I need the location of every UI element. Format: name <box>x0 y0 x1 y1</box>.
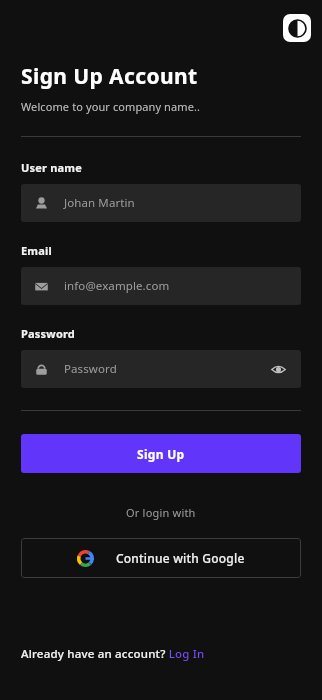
staticText: Sign Up Account <box>21 62 198 91</box>
staticText: Password <box>64 361 117 377</box>
button[interactable]: Sign Up <box>21 434 301 473</box>
button[interactable]: Continue with Google <box>21 538 301 578</box>
button[interactable]: Johan Martin <box>21 184 301 222</box>
staticText: info@example.com <box>64 278 170 294</box>
button[interactable]: info@example.com <box>21 267 301 305</box>
staticText: Sign Up <box>137 446 185 462</box>
button[interactable]: Toggle theme <box>283 14 311 42</box>
staticText: Welcome to your company name.. <box>21 99 201 114</box>
button[interactable]: Password <box>21 350 301 388</box>
staticText: Password <box>21 326 76 341</box>
staticText: Email <box>21 243 53 258</box>
staticText: Johan Martin <box>64 195 135 211</box>
staticText: Already have an account? Log In <box>21 646 205 662</box>
staticText: User name <box>21 160 83 175</box>
staticText: Continue with Google <box>116 550 245 566</box>
button[interactable]: Show password <box>268 359 288 379</box>
staticText: Or login with <box>126 505 196 520</box>
